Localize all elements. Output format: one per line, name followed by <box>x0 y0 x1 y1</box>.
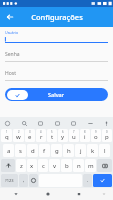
staticText: h <box>67 147 71 155</box>
button[interactable]: s <box>15 144 26 157</box>
button[interactable]: Comma <box>19 174 28 187</box>
button[interactable]: Emoji <box>29 174 38 187</box>
staticText: 0 <box>106 130 108 134</box>
button[interactable]: Back <box>3 10 17 24</box>
staticText: v <box>53 162 57 170</box>
button[interactable]: 6 <box>58 129 68 142</box>
button[interactable]: l <box>99 144 110 157</box>
staticText: p <box>105 133 109 141</box>
button[interactable]: j <box>75 144 86 157</box>
button[interactable]: Recents <box>63 188 94 200</box>
button[interactable]: x <box>27 159 37 172</box>
button[interactable]: g <box>51 144 62 157</box>
staticText: w <box>16 133 21 141</box>
button[interactable]: 9 <box>91 129 101 142</box>
staticText: , <box>23 177 25 184</box>
staticText: l <box>104 147 106 155</box>
staticText: z <box>20 162 23 170</box>
button[interactable]: 1 <box>1 129 12 142</box>
button[interactable]: 8 <box>80 129 90 142</box>
button[interactable]: Usuário <box>5 30 108 43</box>
button[interactable]: Google <box>2 118 12 128</box>
button[interactable]: Period <box>83 174 92 187</box>
button[interactable]: 5 <box>47 129 57 142</box>
staticText: f <box>43 147 46 155</box>
staticText: u <box>72 133 76 141</box>
staticText: r <box>40 133 43 141</box>
staticText: 7 <box>73 130 75 134</box>
button[interactable]: Home <box>32 188 63 200</box>
button[interactable]: Salvar <box>5 88 108 101</box>
staticText: 1 <box>6 130 8 134</box>
button[interactable]: Hide keyboard <box>94 188 113 200</box>
button[interactable]: b <box>61 159 72 172</box>
button[interactable]: n <box>73 159 84 172</box>
staticText: s <box>19 147 22 155</box>
button[interactable]: ?123 <box>1 174 18 187</box>
staticText: x <box>30 162 34 170</box>
button[interactable]: Host <box>5 68 108 81</box>
button[interactable]: c <box>38 159 48 172</box>
staticText: 3 <box>29 130 31 134</box>
staticText: n <box>77 162 81 170</box>
staticText: m <box>88 162 94 170</box>
button[interactable]: m <box>85 159 96 172</box>
staticText: 6 <box>62 130 64 134</box>
staticText: b <box>65 162 69 170</box>
staticText: y <box>61 133 65 141</box>
button[interactable]: 7 <box>69 129 79 142</box>
staticText: 4 <box>40 130 42 134</box>
staticText: t <box>51 133 54 141</box>
staticText: k <box>91 147 95 155</box>
button[interactable]: a <box>3 144 14 157</box>
button[interactable]: Voice input <box>101 118 111 128</box>
staticText: a <box>7 147 11 155</box>
staticText: j <box>80 147 82 155</box>
button[interactable]: z <box>16 159 26 172</box>
button[interactable]: GIF <box>35 118 45 128</box>
button[interactable]: 4 <box>36 129 46 142</box>
button[interactable]: Enter <box>93 174 112 187</box>
staticText: c <box>42 162 45 170</box>
button[interactable]: Shift <box>1 159 15 172</box>
staticText: Salvar <box>48 91 65 98</box>
button[interactable]: k <box>87 144 98 157</box>
staticText: e <box>28 133 32 141</box>
staticText: o <box>94 133 98 141</box>
button[interactable]: f <box>39 144 50 157</box>
button[interactable]: h <box>63 144 74 157</box>
staticText: 2 <box>18 130 20 134</box>
button[interactable]: d <box>27 144 38 157</box>
staticText: i <box>84 133 86 141</box>
staticText: Host <box>5 70 16 77</box>
button[interactable]: 3 <box>25 129 35 142</box>
staticText: Configurações <box>31 12 83 22</box>
button[interactable]: Senha <box>5 49 108 62</box>
button[interactable]: 0 <box>102 129 112 142</box>
staticText: ?123 <box>5 178 14 183</box>
staticText: Usuário <box>5 30 19 35</box>
button[interactable]: More <box>85 118 95 128</box>
button[interactable]: 2 <box>13 129 24 142</box>
staticText: q <box>5 133 9 141</box>
staticText: d <box>31 147 35 155</box>
button[interactable]: Backspace <box>97 159 112 172</box>
button[interactable]: v <box>49 159 60 172</box>
staticText: 5 <box>51 130 53 134</box>
staticText: . <box>87 177 89 184</box>
staticText: Senha <box>5 51 20 58</box>
button[interactable]: Search <box>19 118 29 128</box>
staticText: 8 <box>84 130 86 134</box>
button[interactable]: Sticker <box>52 118 62 128</box>
button[interactable]: Back <box>0 188 32 200</box>
staticText: g <box>55 147 59 155</box>
button[interactable]: Clipboard <box>68 118 78 128</box>
staticText: 9 <box>95 130 97 134</box>
